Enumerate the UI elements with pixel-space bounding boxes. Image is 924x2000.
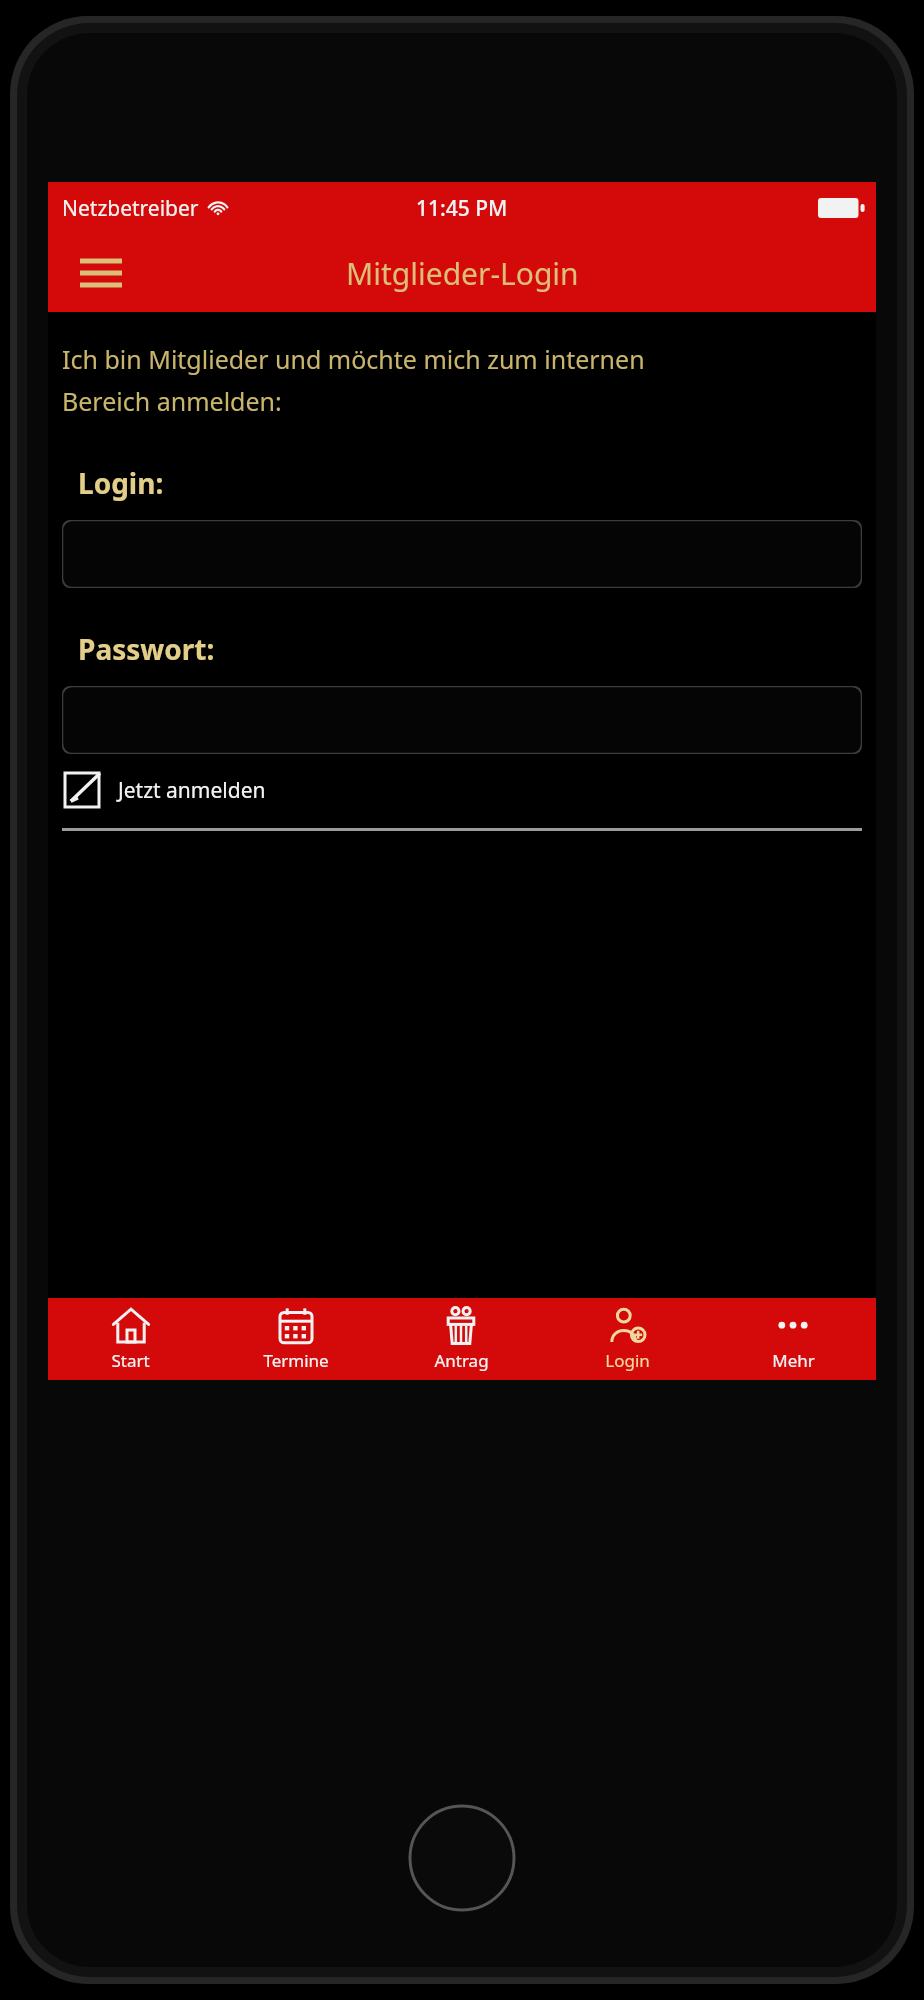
staticText: Start <box>111 1349 150 1372</box>
staticText: 11:45 PM <box>416 194 508 223</box>
button[interactable]: Termine <box>213 1298 378 1380</box>
staticText: Netzbetreiber <box>62 194 199 223</box>
button[interactable]: Menü <box>72 244 130 302</box>
staticText: Termine <box>263 1349 329 1372</box>
button[interactable]: Mehr <box>710 1298 876 1380</box>
staticText: Mehr <box>772 1349 815 1372</box>
staticText: Passwort: <box>78 630 215 668</box>
staticText: Mitglieder-Login <box>346 253 579 294</box>
staticText: Login <box>605 1349 650 1372</box>
button[interactable]: Login <box>544 1298 710 1380</box>
button[interactable] <box>62 520 862 588</box>
button[interactable]: Antrag <box>378 1298 544 1380</box>
staticText: Jetzt anmelden <box>118 776 266 805</box>
button[interactable] <box>62 686 862 754</box>
staticText: Ich bin Mitglieder und möchte mich zum i… <box>62 342 645 418</box>
button[interactable]: Jetzt anmelden <box>62 770 862 810</box>
staticText: Login: <box>78 464 164 502</box>
button[interactable]: Start <box>48 1298 213 1380</box>
staticText: Antrag <box>434 1349 489 1372</box>
